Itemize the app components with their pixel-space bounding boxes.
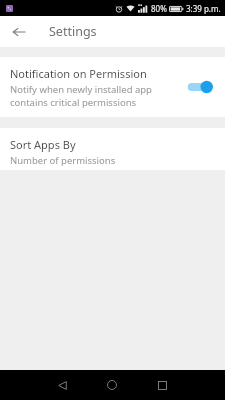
button[interactable]: Home: [100, 373, 124, 397]
button[interactable]: Notification on Permission: [0, 57, 225, 117]
staticText: contains critical permissions: [10, 96, 137, 109]
staticText: Notification on Permission: [10, 66, 147, 81]
staticText: Number of permissions: [10, 154, 116, 167]
staticText: Sort Apps By: [10, 137, 76, 152]
staticText: 3:39 p.m.: [186, 3, 221, 14]
button[interactable]: Recent apps: [150, 373, 174, 397]
staticText: Notify when newly installed app: [10, 83, 152, 96]
staticText: Settings: [49, 23, 97, 40]
staticText: 80%: [151, 3, 167, 14]
button[interactable]: Back: [7, 20, 31, 44]
button[interactable]: Sort Apps By: [0, 128, 225, 170]
button[interactable]: Notification on Permission toggle: [186, 77, 214, 97]
button[interactable]: Back: [50, 373, 74, 397]
